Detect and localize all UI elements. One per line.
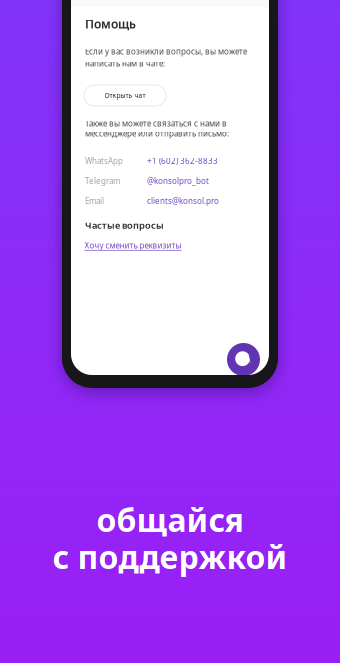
staticText: с поддержкой xyxy=(52,535,287,578)
staticText: Открыть чат xyxy=(104,91,145,100)
staticText: clients@konsol.pro xyxy=(147,196,219,206)
staticText: мессенджере или отправить письмо: xyxy=(85,128,229,139)
staticText: общайся xyxy=(96,498,243,541)
staticText: написать нам в чате: xyxy=(85,58,165,69)
button[interactable]: Хочу сменить реквизиты xyxy=(84,240,181,251)
staticText: Telegram xyxy=(85,176,120,186)
staticText: Хочу сменить реквизиты xyxy=(84,240,181,251)
staticText: Также вы можете связаться с нами в xyxy=(85,118,227,129)
staticText: Помощь xyxy=(85,16,136,32)
button[interactable]: Открыть чат xyxy=(84,85,166,106)
staticText: +1 (602) 362-8833 xyxy=(147,156,218,166)
staticText: Частые вопросы xyxy=(85,219,164,231)
staticText: Если у вас возникли вопросы, вы можете xyxy=(85,46,247,57)
staticText: Email xyxy=(85,196,104,206)
staticText: @konsolpro_bot xyxy=(147,176,209,186)
button[interactable]: Открыть чат xyxy=(227,343,260,376)
staticText: WhatsApp xyxy=(85,156,123,166)
